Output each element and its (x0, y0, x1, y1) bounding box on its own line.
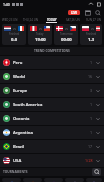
staticText: Argentina (13, 130, 90, 136)
staticText: 0-0 (11, 37, 18, 43)
staticText: 16 (88, 74, 93, 79)
button[interactable]: Calendar (84, 9, 91, 16)
staticText: LIVE (71, 11, 78, 15)
button[interactable]: World (0, 70, 104, 83)
button[interactable]: TODAY (41, 16, 62, 23)
staticText: vs (65, 27, 68, 31)
staticText: TODAY (47, 18, 57, 22)
staticText: 19:00 (35, 37, 46, 43)
button[interactable]: WED,23 UN (0, 16, 20, 23)
staticText: TREND COMPETITIONS (34, 49, 70, 53)
button[interactable]: South America (0, 98, 104, 111)
button[interactable]: Premier (44, 178, 63, 182)
button[interactable]: Copa (86, 178, 102, 182)
button[interactable]: SAT,26 UN (62, 16, 83, 23)
staticText: Tomorrow (60, 32, 73, 36)
button[interactable]: UEFA (2, 178, 21, 182)
staticText: vs (91, 27, 94, 31)
staticText: 1-3 (88, 37, 95, 43)
button[interactable]: Oceania (0, 112, 104, 125)
staticText: THU,24 UN (23, 18, 38, 22)
staticText: Peru (13, 60, 90, 66)
staticText: 1:40 (3, 2, 10, 7)
staticText: WED,23 UN (2, 18, 18, 22)
button[interactable]: Peru (0, 56, 104, 69)
staticText: 1 (90, 116, 93, 121)
button[interactable]: vs (80, 24, 102, 45)
staticText: 00:00 (61, 37, 72, 43)
staticText: vs (39, 27, 42, 31)
staticText: SAT,26 UN (66, 18, 80, 22)
staticText: 1/28 (85, 158, 93, 163)
staticText: 3 (90, 88, 93, 93)
staticText: World (13, 74, 88, 80)
button[interactable]: Search (94, 9, 101, 16)
button[interactable]: USA (0, 154, 104, 167)
staticText: Europe (13, 88, 90, 94)
staticText: Finished (9, 32, 20, 36)
staticText: TOURNAMENTS (3, 170, 28, 174)
button[interactable]: vs (28, 24, 52, 45)
button[interactable]: THU,24 UN (20, 16, 41, 23)
button[interactable]: vs (54, 24, 78, 45)
staticText: USA (13, 158, 85, 164)
staticText: Today (36, 32, 44, 36)
button[interactable]: Brazil (0, 140, 104, 153)
button[interactable]: Europe (0, 84, 104, 97)
button[interactable]: LIVE (68, 10, 80, 15)
staticText: Oceania (13, 116, 90, 122)
button[interactable]: Argentina (0, 126, 104, 139)
staticText: Finished (86, 32, 97, 36)
staticText: SUN,27 UN (86, 18, 102, 22)
button[interactable]: UEFA Europa (23, 178, 42, 182)
staticText: 1 (90, 102, 93, 107)
staticText: 17 (88, 144, 93, 149)
staticText: Brazil (13, 144, 88, 150)
button[interactable]: Search tournaments (92, 168, 101, 176)
staticText: 1 (90, 60, 93, 65)
staticText: South America (13, 102, 90, 108)
staticText: vs (13, 27, 16, 31)
button[interactable]: vs (2, 24, 26, 45)
staticText: 1 (90, 130, 93, 135)
button[interactable]: EURO (65, 178, 84, 182)
button[interactable]: SUN,27 UN (83, 16, 104, 23)
